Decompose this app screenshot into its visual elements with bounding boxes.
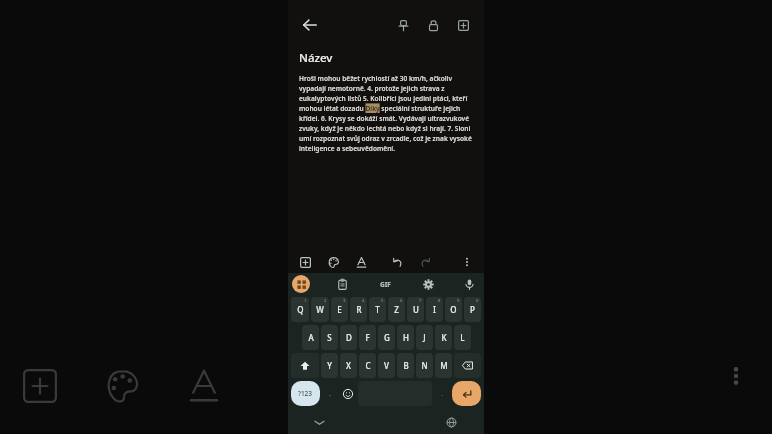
staticText: 6 — [400, 298, 403, 304]
button[interactable]: T — [369, 297, 386, 322]
button[interactable]: D — [340, 325, 357, 350]
button[interactable]: Redo — [416, 253, 434, 271]
button[interactable]: I — [426, 297, 443, 322]
button[interactable]: Keyboard switch — [292, 275, 310, 293]
button[interactable]: L — [454, 325, 471, 350]
staticText: 2 — [324, 298, 327, 304]
staticText: N — [421, 360, 428, 371]
button[interactable]: U — [407, 297, 424, 322]
button[interactable]: F — [359, 325, 376, 350]
button[interactable]: Y — [321, 353, 338, 378]
button[interactable]: G — [378, 325, 395, 350]
button[interactable]: X — [340, 353, 357, 378]
staticText: Q — [297, 304, 304, 315]
button[interactable]: Shift — [291, 353, 319, 378]
button[interactable]: Q — [291, 297, 309, 322]
staticText: 4 — [362, 298, 365, 304]
button[interactable]: B — [397, 353, 414, 378]
button[interactable]: O — [445, 297, 462, 322]
staticText: Název — [299, 50, 333, 66]
button[interactable]: V — [378, 353, 395, 378]
button[interactable]: H — [397, 325, 414, 350]
staticText: L — [460, 332, 465, 343]
staticText: Y — [327, 360, 332, 371]
button[interactable]: S — [321, 325, 338, 350]
staticText: T — [375, 304, 380, 315]
staticText: F — [365, 332, 370, 343]
staticText: O — [450, 304, 457, 315]
button[interactable]: Voice input — [460, 275, 478, 293]
button[interactable]: Pin — [391, 13, 415, 37]
button[interactable]: Emoji — [340, 381, 356, 406]
staticText: 8 — [438, 298, 441, 304]
staticText: U — [413, 304, 419, 315]
button[interactable]: E — [331, 297, 348, 322]
staticText: R — [356, 304, 362, 315]
staticText: Hroši mohou běžet rychlostí až 30 km/h, … — [299, 74, 473, 152]
button[interactable]: Add — [10, 356, 70, 416]
staticText: , — [329, 390, 331, 398]
button[interactable]: Back — [297, 12, 323, 38]
staticText: S — [327, 332, 332, 343]
staticText: 3 — [343, 298, 346, 304]
staticText: I — [433, 304, 436, 315]
staticText: . — [441, 390, 443, 398]
staticText: K — [441, 332, 447, 343]
button[interactable]: J — [416, 325, 433, 350]
button[interactable]: Backspace — [454, 353, 481, 378]
button[interactable]: P — [464, 297, 481, 322]
button[interactable]: More options — [718, 358, 754, 394]
button[interactable]: K — [435, 325, 452, 350]
button[interactable]: Color — [324, 253, 342, 271]
staticText: W — [316, 304, 324, 315]
button[interactable]: Add to — [451, 13, 475, 37]
button[interactable]: C — [359, 353, 376, 378]
staticText: B — [403, 360, 409, 371]
button[interactable]: M — [435, 353, 452, 378]
button[interactable]: Settings — [419, 275, 437, 293]
button[interactable]: Undo — [388, 253, 406, 271]
staticText: ?123 — [298, 389, 313, 398]
button[interactable]: A — [302, 325, 319, 350]
button[interactable]: GIF — [374, 275, 396, 293]
staticText: 7 — [419, 298, 422, 304]
button[interactable]: R — [350, 297, 367, 322]
button[interactable]: More — [458, 253, 476, 271]
staticText: J — [423, 332, 426, 343]
staticText: 5 — [381, 298, 384, 304]
staticText: Z — [394, 304, 399, 315]
staticText: P — [470, 304, 475, 315]
button[interactable]: N — [416, 353, 433, 378]
button[interactable]: Hide keyboard — [310, 413, 328, 431]
staticText: GIF — [380, 280, 391, 289]
button[interactable]: Z — [388, 297, 405, 322]
button[interactable]: ?123 — [291, 381, 320, 406]
button[interactable]: Clipboard — [333, 275, 351, 293]
button[interactable]: Enter — [452, 381, 481, 406]
staticText: V — [384, 360, 389, 371]
button[interactable]: Change language — [442, 413, 460, 431]
staticText: 1 — [304, 298, 307, 304]
staticText: X — [346, 360, 351, 371]
staticText: A — [308, 332, 314, 343]
staticText: C — [365, 360, 371, 371]
button[interactable]: Text format — [174, 356, 234, 416]
button[interactable]: Format text — [352, 253, 370, 271]
staticText: H — [403, 332, 409, 343]
staticText: D — [346, 332, 352, 343]
staticText: 0 — [476, 298, 479, 304]
staticText: G — [384, 332, 390, 343]
button[interactable]: W — [311, 297, 329, 322]
staticText: E — [337, 304, 342, 315]
staticText: 9 — [457, 298, 460, 304]
button[interactable]: Insert — [296, 253, 314, 271]
staticText: M — [440, 360, 448, 371]
button[interactable]: Palette — [92, 356, 152, 416]
button[interactable]: Lock — [421, 13, 445, 37]
